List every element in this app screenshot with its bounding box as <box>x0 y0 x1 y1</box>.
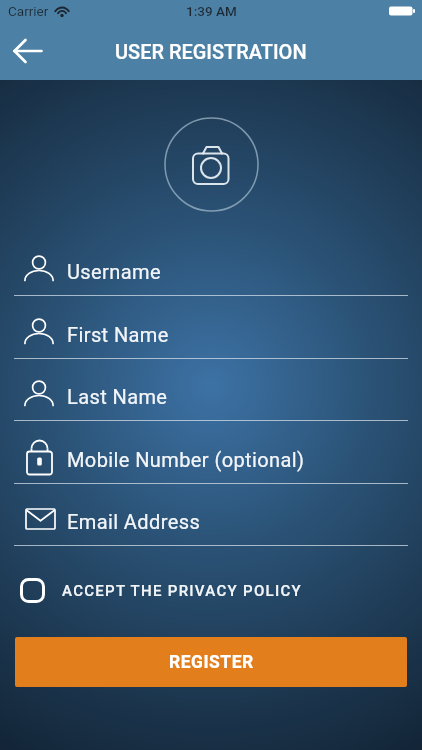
staticText: Username <box>67 260 161 283</box>
button[interactable]: Mobile Number (optional) <box>0 436 422 481</box>
button[interactable]: First Name <box>0 311 422 356</box>
staticText: 1:39 AM <box>186 3 237 19</box>
button[interactable]: Username <box>0 248 422 293</box>
button[interactable]: Email Address <box>0 498 422 543</box>
button[interactable]: REGISTER <box>15 637 407 687</box>
staticText: Email Address <box>67 510 201 533</box>
button[interactable]: ACCEPT THE PRIVACY POLICY <box>0 571 422 610</box>
staticText: USER REGISTRATION <box>115 40 307 63</box>
button[interactable] <box>0 22 56 80</box>
staticText: Carrier <box>8 3 49 19</box>
staticText: ACCEPT THE PRIVACY POLICY <box>62 582 303 600</box>
staticText: Last Name <box>67 385 168 408</box>
staticText: First Name <box>67 323 169 346</box>
staticText: Mobile Number (optional) <box>67 448 305 471</box>
button[interactable]: Last Name <box>0 373 422 418</box>
button[interactable] <box>161 114 261 214</box>
staticText: REGISTER <box>169 652 254 673</box>
